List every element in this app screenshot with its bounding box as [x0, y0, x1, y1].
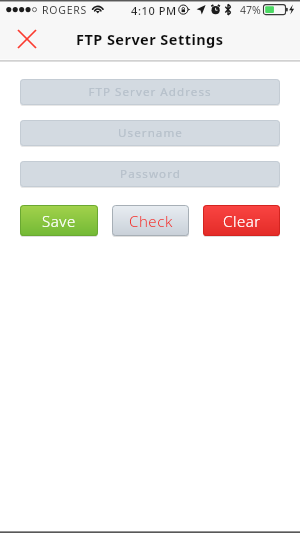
staticText: Username: [118, 125, 183, 141]
staticText: FTP Server Settings: [76, 29, 224, 49]
staticText: FTP Server Address: [88, 84, 212, 100]
staticText: 47%: [240, 3, 261, 17]
button[interactable]: Password: [20, 161, 280, 187]
staticText: ROGERS: [42, 3, 88, 17]
staticText: 4:10 PM: [131, 3, 177, 18]
staticText: Check: [129, 211, 173, 231]
button[interactable]: Clear: [203, 205, 280, 236]
staticText: Clear: [223, 211, 261, 231]
button[interactable]: Check: [112, 205, 189, 236]
staticText: Password: [120, 166, 181, 182]
staticText: Save: [42, 211, 76, 231]
button[interactable]: Save: [20, 205, 98, 236]
button[interactable]: FTP Server Address: [20, 79, 280, 105]
button[interactable]: Close: [13, 25, 41, 53]
button[interactable]: Username: [20, 120, 280, 146]
